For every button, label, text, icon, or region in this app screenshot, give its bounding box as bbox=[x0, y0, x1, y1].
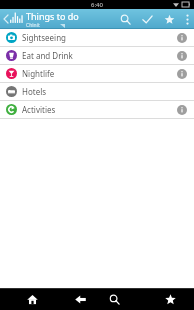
button[interactable]: Navigate up bbox=[0, 9, 26, 29]
button[interactable]: Sightseeing bbox=[0, 29, 194, 46]
button[interactable]: Favorite bbox=[158, 9, 180, 29]
button[interactable]: Home bbox=[22, 289, 42, 309]
button[interactable]: Hotels bbox=[0, 83, 194, 100]
staticText: Sightseeing bbox=[22, 32, 176, 43]
staticText: Chinit bbox=[26, 22, 40, 29]
button[interactable]: Activities bbox=[0, 101, 194, 118]
button[interactable]: Nightlife bbox=[0, 65, 194, 82]
staticText: Things to do bbox=[26, 10, 79, 22]
button[interactable]: More options bbox=[180, 9, 194, 29]
button[interactable]: Info about Eat and Drink bbox=[176, 50, 188, 62]
staticText: Nightlife bbox=[22, 68, 176, 79]
staticText: Eat and Drink bbox=[22, 50, 176, 61]
staticText: Hotels bbox=[22, 86, 188, 97]
button[interactable]: Info about Nightlife bbox=[176, 68, 188, 80]
button[interactable]: Info about Sightseeing bbox=[176, 32, 188, 44]
staticText: Activities bbox=[22, 104, 176, 115]
button[interactable]: Edit bbox=[136, 9, 158, 29]
button[interactable]: Search bbox=[104, 289, 124, 309]
button[interactable]: Bookmarks bbox=[160, 289, 180, 309]
staticText: 6:40 bbox=[91, 1, 103, 9]
button[interactable]: Search bbox=[114, 9, 136, 29]
button[interactable]: Things to do bbox=[26, 9, 114, 29]
button[interactable]: Eat and Drink bbox=[0, 47, 194, 64]
button[interactable]: Back bbox=[70, 289, 90, 309]
button[interactable]: Info about Activities bbox=[176, 104, 188, 116]
